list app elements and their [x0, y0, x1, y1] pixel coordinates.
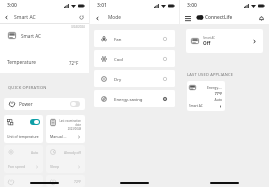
staticText: 77°F [214, 91, 222, 96]
button[interactable]: Smart AC [8, 30, 82, 41]
staticText: Dry [114, 76, 122, 82]
staticText: Smart AC [14, 14, 36, 21]
staticText: ConnectLife [205, 14, 233, 21]
button[interactable]: Power [4, 98, 85, 110]
staticText: 3:00 [187, 2, 197, 9]
staticText: Sleep [50, 164, 60, 169]
staticText: Cool [114, 56, 124, 62]
button[interactable]: Already off [46, 145, 85, 173]
button[interactable]: Dry [94, 70, 175, 87]
staticText: Auto [31, 150, 39, 154]
button[interactable]: Notifications [257, 14, 265, 22]
staticText: Fan speed [8, 164, 26, 169]
staticText: Already off [64, 150, 81, 154]
staticText: 2023/0048 [67, 127, 81, 131]
button[interactable]: Smart AC [186, 29, 263, 53]
staticText: Fan [114, 36, 122, 42]
staticText: Last examination [59, 119, 81, 123]
staticText: 72°F [74, 179, 81, 183]
button[interactable]: Auto [4, 145, 43, 173]
staticText: date [75, 123, 81, 127]
staticText: Power [19, 101, 33, 107]
button[interactable]: Unit of temperature [4, 115, 43, 143]
button[interactable] [4, 175, 43, 187]
staticText: 72°F [69, 60, 79, 66]
button[interactable]: Energy-... [187, 81, 225, 111]
staticText: Energy-saving [114, 96, 143, 102]
staticText: Unit of temperature [7, 134, 39, 139]
button[interactable]: Back [2, 13, 11, 22]
staticText: Temperature [7, 59, 37, 66]
button[interactable]: Refresh [77, 13, 85, 21]
staticText: 3:00 [7, 2, 17, 9]
staticText: Manual ... [50, 134, 67, 139]
staticText: Smart AC [203, 36, 216, 40]
staticText: Energy-... [207, 85, 222, 90]
staticText: Smart AC [21, 33, 41, 39]
staticText: LAST USED APPLIANCE [187, 72, 234, 77]
button[interactable]: Last examination [46, 115, 85, 143]
staticText: Smart AC [189, 104, 203, 108]
button[interactable]: Energy-saving [94, 90, 175, 107]
button[interactable]: Menu [184, 14, 192, 22]
staticText: Mode [108, 14, 121, 21]
staticText: 3/24/2024 [71, 25, 85, 29]
staticText: 3:01 [97, 2, 107, 9]
staticText: Auto [214, 97, 222, 102]
button[interactable]: Cool [94, 50, 175, 67]
staticText: Off [203, 40, 211, 46]
button[interactable]: 72°F [46, 175, 85, 187]
staticText: QUICK OPERATION [8, 85, 47, 90]
button[interactable]: Fan [94, 30, 175, 47]
button[interactable]: Back [93, 14, 101, 22]
